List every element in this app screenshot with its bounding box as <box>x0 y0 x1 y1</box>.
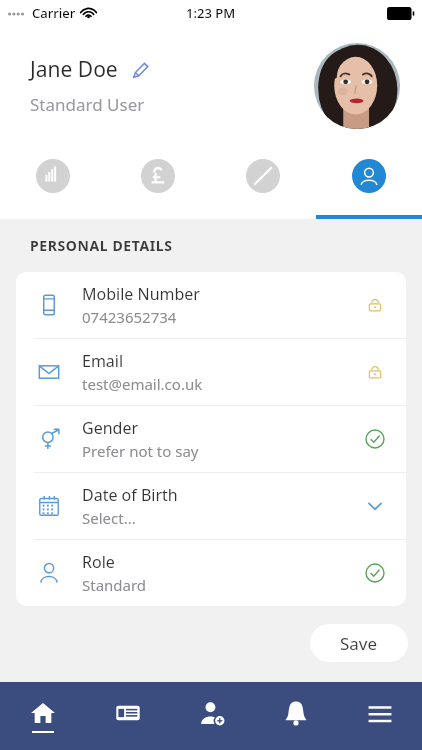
button[interactable]: Menu <box>338 682 422 750</box>
button[interactable]: Gender <box>16 406 406 472</box>
button[interactable]: Profile photo <box>314 43 400 129</box>
button[interactable]: Invoices <box>85 682 170 750</box>
button[interactable]: Profile <box>316 145 422 219</box>
staticText: Email <box>82 350 124 372</box>
button[interactable]: Verified <box>362 426 388 452</box>
staticText: 1:23 PM <box>186 4 236 22</box>
button[interactable]: Locked <box>362 359 388 385</box>
staticText: Mobile Number <box>82 283 200 305</box>
button[interactable]: Save <box>310 624 408 662</box>
staticText: Standard User <box>30 93 145 116</box>
staticText: 07423652734 <box>82 307 177 327</box>
staticText: test@email.co.uk <box>82 374 203 394</box>
button[interactable]: Expand <box>362 493 388 519</box>
staticText: Save <box>340 632 378 655</box>
staticText: Prefer not to say <box>82 441 199 461</box>
button[interactable]: Add user <box>170 682 254 750</box>
staticText: Select... <box>82 508 136 528</box>
button[interactable]: Email <box>16 339 406 405</box>
button[interactable]: Home <box>0 682 85 750</box>
staticText: Date of Birth <box>82 484 178 506</box>
staticText: Standard <box>82 575 147 595</box>
button[interactable]: Notifications <box>254 682 338 750</box>
staticText: PERSONAL DETAILS <box>30 236 173 255</box>
button[interactable]: Mobile Number <box>16 272 406 338</box>
button[interactable]: More <box>210 145 316 219</box>
button[interactable]: Edit name <box>128 58 152 82</box>
staticText: Gender <box>82 417 139 439</box>
button[interactable]: Payments <box>105 145 210 219</box>
button[interactable]: Locked <box>362 292 388 318</box>
button[interactable]: Date of Birth <box>16 473 406 539</box>
button[interactable]: Reports <box>0 145 105 219</box>
staticText: Carrier <box>32 4 76 22</box>
staticText: Jane Doe <box>30 55 118 84</box>
staticText: Role <box>82 551 115 573</box>
button[interactable]: Role <box>16 540 406 606</box>
button[interactable]: Verified <box>362 560 388 586</box>
